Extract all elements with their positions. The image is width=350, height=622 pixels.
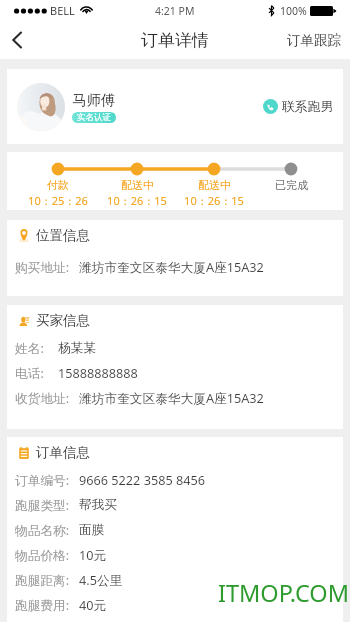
staticText: 购买地址:: [15, 258, 70, 275]
staticText: 订单跟踪: [287, 32, 341, 49]
button[interactable]: 订单跟踪: [279, 21, 350, 59]
staticText: 10：26：15: [184, 193, 244, 208]
staticText: 100%: [280, 4, 307, 18]
staticText: 实名认证: [77, 112, 111, 123]
staticText: BELL: [50, 3, 75, 18]
staticText: 9666 5222 3585 8456: [79, 471, 206, 488]
staticText: 配送中: [121, 178, 154, 192]
staticText: 买家信息: [36, 312, 90, 329]
staticText: 物品名称:: [15, 521, 70, 538]
staticText: 姓名:: [15, 339, 44, 356]
staticText: ITMOP.COM: [218, 577, 350, 609]
staticText: 潍坊市奎文区泰华大厦A座15A32: [79, 258, 264, 275]
staticText: 马师傅: [72, 91, 116, 109]
staticText: 配送中: [198, 178, 231, 192]
staticText: 10：25：26: [28, 193, 88, 208]
staticText: 帮我买: [79, 497, 118, 513]
staticText: 收货地址:: [15, 389, 70, 406]
staticText: 4:21 PM: [155, 4, 195, 18]
staticText: 潍坊市奎文区泰华大厦A座15A32: [79, 389, 264, 406]
staticText: 跑腿类型:: [15, 496, 70, 513]
staticText: 4.5公里: [79, 571, 123, 588]
staticText: 40元: [79, 596, 107, 613]
staticText: 位置信息: [36, 227, 90, 244]
staticText: 杨某某: [58, 340, 97, 356]
staticText: 订单信息: [36, 444, 90, 461]
staticText: 订单编号:: [15, 471, 70, 488]
staticText: 10：26：15: [107, 193, 167, 208]
staticText: 电话:: [15, 364, 44, 381]
staticText: 联系跑男: [282, 99, 334, 115]
button[interactable]: 联系跑男: [257, 69, 343, 144]
staticText: 订单详情: [141, 30, 209, 51]
staticText: 已完成: [275, 178, 308, 192]
staticText: 15888888888: [58, 364, 138, 381]
staticText: 跑腿距离:: [15, 571, 70, 588]
staticText: 跑腿费用:: [15, 596, 70, 613]
staticText: 物品价格:: [15, 546, 70, 563]
staticText: 面膜: [79, 522, 105, 538]
staticText: 付款: [47, 178, 69, 192]
staticText: 10元: [79, 546, 107, 563]
button[interactable]: Back: [0, 21, 34, 59]
